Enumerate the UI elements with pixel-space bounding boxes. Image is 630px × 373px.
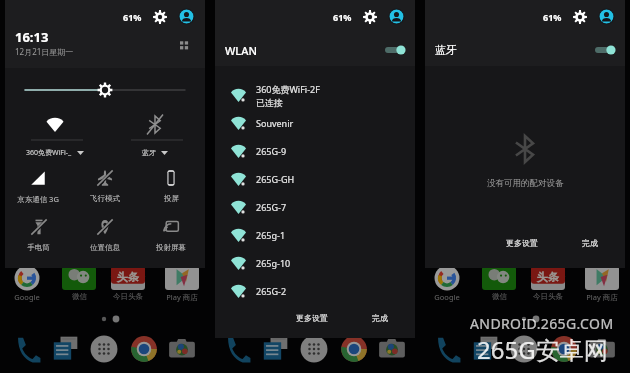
button[interactable]: Apps xyxy=(510,335,538,363)
button[interactable]: Google xyxy=(430,266,464,290)
staticText: 265g-10 xyxy=(256,257,291,269)
button[interactable]: Play 商店 xyxy=(165,266,199,290)
button[interactable]: Messages xyxy=(471,335,499,363)
staticText: 蓝牙 xyxy=(435,43,457,57)
button[interactable]: 手电筒 xyxy=(5,211,71,260)
staticText: 61% xyxy=(543,11,562,23)
button[interactable]: Settings xyxy=(153,10,167,24)
button[interactable]: User profile xyxy=(599,9,614,24)
staticText: 更多设置 xyxy=(506,238,538,248)
staticText: ANDROID.265G.COM xyxy=(470,314,614,333)
button[interactable]: Chrome xyxy=(550,335,578,363)
button[interactable]: 微信 xyxy=(272,266,306,290)
staticText: 16:13 xyxy=(15,28,49,46)
staticText: 12月21日星期一 xyxy=(15,46,74,57)
staticText: 已连接 xyxy=(256,97,283,108)
button[interactable]: 265g-1 xyxy=(231,224,415,246)
button[interactable]: Apps xyxy=(90,335,118,363)
staticText: 61% xyxy=(333,11,352,23)
staticText: 265G-9 xyxy=(256,145,287,157)
staticText: 没有可用的配对设备 xyxy=(487,178,564,189)
button[interactable]: 今日头条 xyxy=(531,266,565,290)
staticText: 完成 xyxy=(582,238,598,248)
button[interactable]: Google xyxy=(10,266,44,290)
button[interactable]: 京东通信 3G xyxy=(5,162,71,211)
staticText: 飞行模式 xyxy=(90,194,120,203)
staticText: 265g-1 xyxy=(256,229,286,241)
staticText: 今日头条 xyxy=(533,292,563,301)
button[interactable]: 完成 xyxy=(364,310,396,326)
staticText: Google xyxy=(224,292,250,302)
button[interactable]: Messages xyxy=(51,335,79,363)
staticText: 头条 xyxy=(117,270,139,284)
staticText: 手电筒 xyxy=(27,243,50,252)
staticText: Play 商店 xyxy=(166,292,198,302)
button[interactable]: 位置信息 xyxy=(72,211,138,260)
button[interactable]: Camera xyxy=(378,335,406,363)
button[interactable]: 投射屏幕 xyxy=(138,211,204,260)
staticText: 265G-7 xyxy=(256,201,287,213)
button[interactable]: Phone xyxy=(433,335,461,363)
button[interactable]: Camera xyxy=(588,335,616,363)
button[interactable]: WLAN xyxy=(225,38,406,62)
button[interactable]: 蓝牙 xyxy=(435,38,616,62)
staticText: 61% xyxy=(123,11,142,23)
button[interactable]: Play 商店 xyxy=(585,266,619,290)
button[interactable]: 360免费WiFi-2F xyxy=(231,82,415,108)
button[interactable]: Chrome xyxy=(130,335,158,363)
button[interactable]: 今日头条 xyxy=(111,266,145,290)
button[interactable]: Settings xyxy=(363,10,377,24)
button[interactable]: User profile xyxy=(389,9,404,24)
button[interactable]: WLAN xyxy=(5,104,105,156)
button[interactable]: Phone xyxy=(13,335,41,363)
staticText: 投射屏幕 xyxy=(156,243,186,252)
button[interactable]: Phone xyxy=(223,335,251,363)
button[interactable]: 微信 xyxy=(482,266,516,290)
staticText: Play 商店 xyxy=(586,292,618,302)
staticText: 蓝牙 xyxy=(142,148,156,157)
staticText: 360免费WiFi-2F xyxy=(256,83,320,95)
staticText: 完成 xyxy=(372,313,388,323)
button[interactable]: 飞行模式 xyxy=(72,162,138,211)
button[interactable]: Messages xyxy=(261,335,289,363)
button[interactable]: 更多设置 xyxy=(498,235,546,251)
button[interactable]: Apps xyxy=(300,335,328,363)
button[interactable]: Souvenir xyxy=(231,112,415,134)
staticText: 265G安卓网 xyxy=(477,333,608,366)
staticText: 今日头条 xyxy=(113,292,143,301)
staticText: Souvenir xyxy=(256,117,294,129)
staticText: WLAN xyxy=(225,43,257,58)
staticText: 265G-2 xyxy=(256,285,287,297)
staticText: 微信 xyxy=(492,292,507,301)
staticText: 265G-GH xyxy=(256,173,295,185)
staticText: 更多设置 xyxy=(296,313,328,323)
staticText: 360免费WiFi-_ xyxy=(26,148,72,158)
button[interactable]: 265G-7 xyxy=(231,196,415,218)
button[interactable]: Google xyxy=(220,266,254,290)
staticText: 位置信息 xyxy=(90,243,120,252)
button[interactable]: 265G-GH xyxy=(231,168,415,190)
staticText: 头条 xyxy=(537,270,559,284)
button[interactable]: Settings xyxy=(573,10,587,24)
button[interactable]: 265g-10 xyxy=(231,252,415,274)
button[interactable]: 265G-2 xyxy=(231,280,415,302)
staticText: 投屏 xyxy=(164,194,179,203)
button[interactable]: User profile xyxy=(179,9,194,24)
button[interactable]: Camera xyxy=(168,335,196,363)
staticText: Google xyxy=(434,292,460,302)
button[interactable]: 微信 xyxy=(62,266,96,290)
button[interactable]: 265G-9 xyxy=(231,140,415,162)
button[interactable]: Edit quick settings xyxy=(177,38,192,53)
staticText: 微信 xyxy=(72,292,87,301)
button[interactable]: 完成 xyxy=(574,235,606,251)
button[interactable]: Bluetooth xyxy=(105,104,205,156)
button[interactable]: Chrome xyxy=(340,335,368,363)
staticText: 京东通信 3G xyxy=(17,194,59,204)
button[interactable]: 投屏 xyxy=(138,162,204,211)
button[interactable]: 更多设置 xyxy=(288,310,336,326)
